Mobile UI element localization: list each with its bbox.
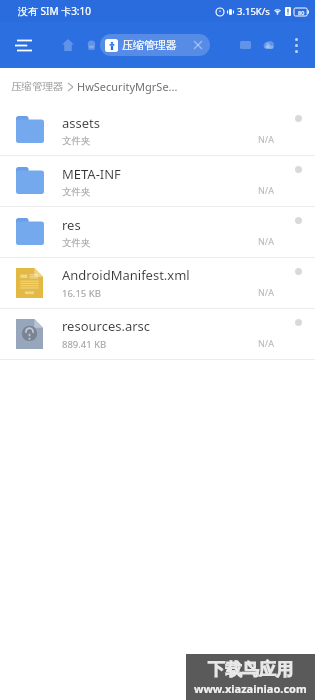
staticText: AndroidManifest.xml: [62, 266, 190, 284]
staticText: N/A: [258, 337, 274, 349]
button[interactable]: Home: [60, 37, 76, 53]
button[interactable]: 压缩管理器: [100, 34, 210, 56]
staticText: 压缩管理器: [122, 38, 177, 52]
button[interactable]: AndroidManifest.xml: [0, 258, 315, 309]
staticText: 16.15 KB: [62, 287, 101, 300]
button[interactable]: Device: [83, 37, 99, 53]
staticText: N/A: [258, 286, 274, 298]
button[interactable]: Window: [237, 37, 253, 53]
button[interactable]: Cloud: [261, 37, 277, 53]
button[interactable]: resources.arsc: [0, 309, 315, 360]
staticText: assets: [62, 114, 100, 132]
button[interactable]: Close tab: [191, 38, 205, 52]
staticText: www.xiazainiao.com: [194, 681, 307, 696]
button[interactable]: 压缩管理器: [0, 68, 315, 105]
staticText: 889.41 KB: [62, 338, 107, 351]
staticText: res: [62, 216, 81, 234]
staticText: N/A: [258, 133, 274, 145]
staticText: N/A: [258, 235, 274, 247]
button[interactable]: Select resources.arsc: [289, 309, 307, 359]
button[interactable]: META-INF: [0, 156, 315, 207]
staticText: 压缩管理器: [11, 80, 64, 93]
button[interactable]: More options: [281, 30, 311, 60]
button[interactable]: Select META-INF: [289, 156, 307, 206]
button[interactable]: Select AndroidManifest.xml: [289, 258, 307, 308]
staticText: 下载鸟应用: [208, 659, 293, 680]
button[interactable]: res: [0, 207, 315, 258]
staticText: META-INF: [62, 165, 121, 183]
button[interactable]: assets: [0, 105, 315, 156]
button[interactable]: Menu: [6, 28, 40, 62]
staticText: 文件夹: [62, 186, 91, 198]
staticText: N/A: [258, 184, 274, 196]
staticText: 没有 SIM 卡3:10: [18, 4, 91, 18]
button[interactable]: Select assets: [289, 105, 307, 155]
staticText: 3.15K/s: [237, 5, 270, 18]
staticText: 文件夹: [62, 237, 91, 249]
staticText: 文件夹: [62, 135, 91, 147]
button[interactable]: Select res: [289, 207, 307, 257]
staticText: resources.arsc: [62, 317, 151, 335]
staticText: 80: [298, 9, 305, 16]
staticText: HwSecurityMgrSe...: [77, 79, 178, 94]
